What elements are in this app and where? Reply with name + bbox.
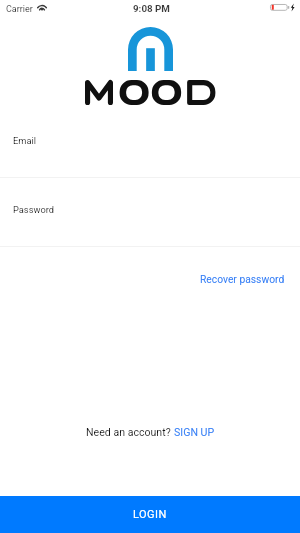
staticText: Recover password (200, 273, 285, 285)
staticText: Password (13, 204, 55, 215)
button[interactable]: SIGN UP (174, 426, 215, 438)
button[interactable]: Email (0, 108, 300, 178)
button[interactable]: LOGIN (0, 496, 300, 533)
staticText: Need an account? (86, 426, 174, 438)
button[interactable]: Password (0, 177, 300, 247)
staticText: 9:08 PM (133, 3, 170, 14)
staticText: LOGIN (133, 508, 167, 521)
staticText: Email (13, 135, 37, 146)
button[interactable]: Recover password (185, 267, 300, 291)
staticText: Carrier (6, 4, 33, 15)
staticText: SIGN UP (174, 426, 215, 438)
